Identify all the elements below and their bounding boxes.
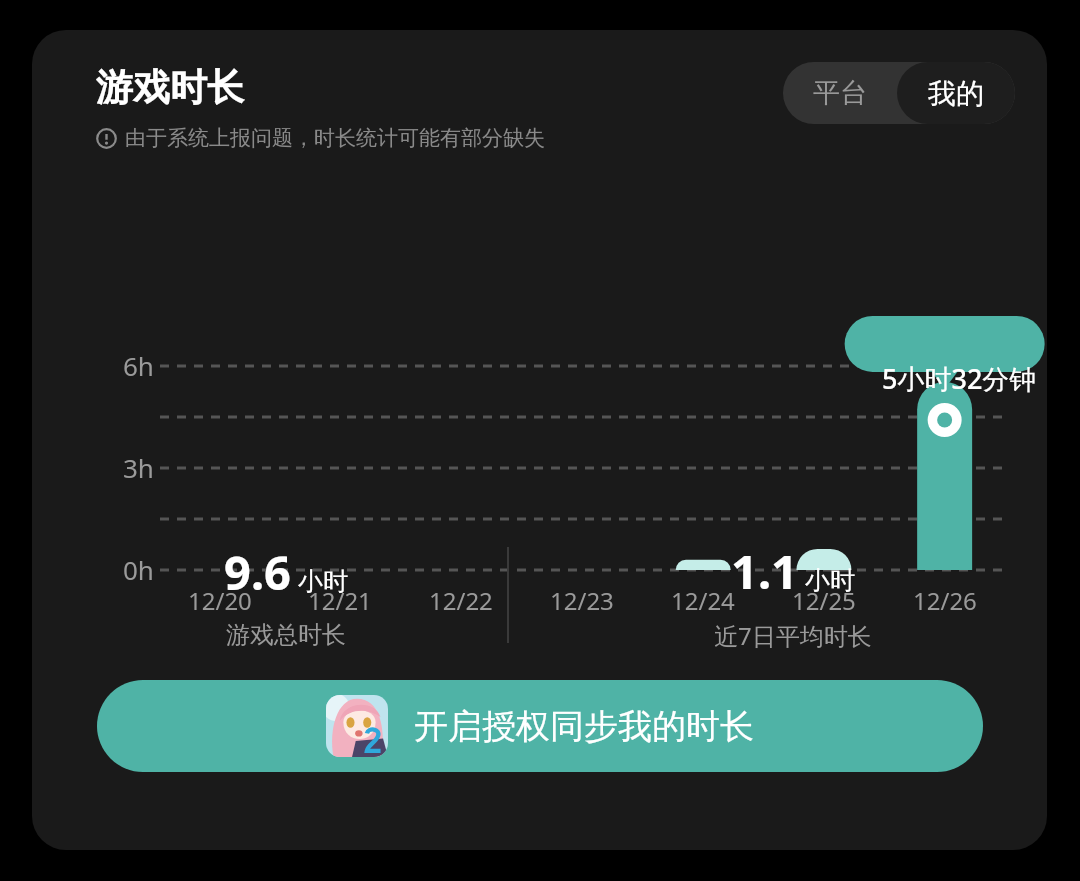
staticText: 12/22 — [429, 584, 493, 617]
staticText: 12/26 — [913, 584, 977, 617]
button[interactable]: 平台 — [783, 62, 897, 124]
staticText: 5小时32分钟 — [882, 360, 1037, 397]
staticText: 12/24 — [671, 584, 735, 617]
other: Game icon — [326, 695, 388, 757]
staticText: 平台 — [813, 76, 867, 110]
staticText: 小时 — [805, 565, 855, 596]
staticText: 游戏时长 — [96, 64, 244, 111]
staticText: 由于系统上报问题，时长统计可能有部分缺失 — [125, 125, 545, 151]
staticText: 12/23 — [550, 584, 614, 617]
staticText: 游戏总时长 — [226, 620, 346, 650]
staticText: 3h — [123, 450, 154, 485]
staticText: 12/25 — [792, 584, 856, 617]
staticText: 12/20 — [188, 584, 252, 617]
staticText: 9.6 — [224, 540, 291, 604]
staticText: 开启授权同步我的时长 — [414, 705, 754, 748]
staticText: 近7日平均时长 — [714, 619, 872, 652]
button[interactable]: 我的 — [897, 62, 1015, 124]
staticText: 0h — [123, 552, 154, 587]
staticText: 6h — [123, 348, 154, 383]
staticText: 12/21 — [308, 584, 372, 617]
staticText: 1.1 — [731, 539, 798, 603]
staticText: 小时 — [298, 566, 348, 597]
staticText: 我的 — [928, 76, 984, 111]
button[interactable]: Game icon — [97, 680, 983, 772]
